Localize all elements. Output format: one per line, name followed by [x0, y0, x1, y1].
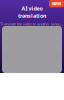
staticText: AI video — [21, 5, 42, 12]
staticText: Translate the video to another language — [0, 21, 64, 26]
staticText: translation — [18, 12, 46, 19]
staticText: NEW — [52, 1, 61, 6]
